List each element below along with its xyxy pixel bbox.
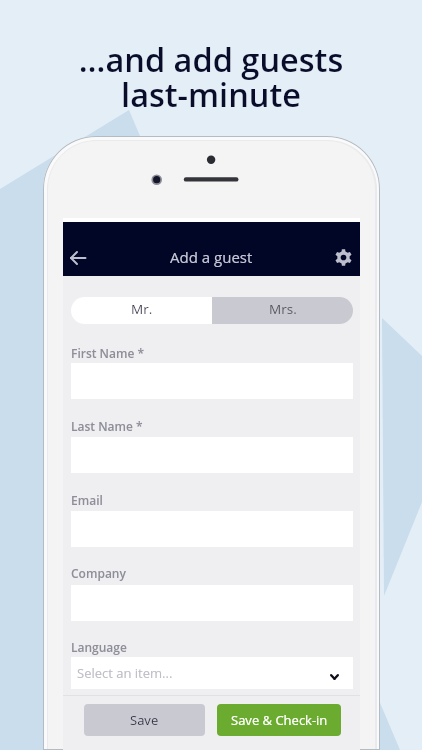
button[interactable]: Save & Check-in — [217, 704, 341, 736]
button[interactable]: Back — [65, 245, 90, 270]
button[interactable]: Mr. — [71, 297, 212, 324]
staticText: Mrs. — [269, 300, 297, 318]
staticText: …and add guests last-minute — [0, 37, 422, 117]
staticText: Language — [71, 639, 127, 655]
button[interactable]: Settings — [331, 245, 356, 270]
staticText: Select an item... — [77, 664, 173, 682]
staticText: Save & Check-in — [231, 711, 328, 729]
staticText: Last Name * — [71, 418, 143, 434]
button[interactable]: Mrs. — [212, 297, 353, 324]
staticText: Save — [130, 711, 159, 729]
button[interactable]: Save — [84, 704, 205, 736]
staticText: Mr. — [131, 300, 153, 318]
staticText: First Name * — [71, 345, 145, 361]
button[interactable]: Select an item... — [71, 657, 353, 689]
staticText: Company — [71, 565, 126, 581]
staticText: Add a guest — [170, 247, 253, 267]
staticText: Email — [71, 492, 103, 508]
